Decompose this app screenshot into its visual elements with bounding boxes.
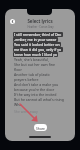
staticText: Yeah, she's beautiful,: [14, 57, 49, 62]
button[interactable]: knew how much I liked yo: [13, 52, 58, 57]
staticText: knew how much I liked yo: [14, 52, 57, 57]
staticText: Another tub of plastic: [14, 72, 51, 77]
staticText: floor: [14, 67, 22, 72]
staticText: You said it looked better on: [14, 42, 60, 47]
staticText: -ember, me in your swear: [14, 37, 57, 42]
button[interactable]: You said it looked better on: [13, 42, 61, 47]
staticText: She went away: [14, 109, 38, 114]
button[interactable]: because you're the door: [13, 87, 56, 92]
button[interactable]: But he cannot all what's rising: [13, 97, 65, 102]
staticText: But he cannot all what's rising: [14, 97, 64, 102]
button[interactable]: -ember, me in your swear: [13, 37, 58, 42]
staticText: Wha: [14, 102, 22, 107]
staticText: because you're the door: [14, 87, 55, 92]
button[interactable]: me than it did you, only if yo: [13, 47, 63, 52]
staticText: me than it did you, only if yo: [14, 47, 62, 52]
button[interactable]: I still remember, third of Dec: [13, 32, 63, 37]
staticText: Heather · Conan Gray: [27, 25, 54, 29]
button[interactable]: If the way into the invited: [13, 92, 58, 97]
button[interactable]: Back: [10, 19, 15, 24]
button[interactable]: And don't take a make you: [13, 82, 60, 87]
button[interactable]: Wha: [13, 102, 23, 107]
staticText: Select lyrics: [27, 18, 53, 24]
button[interactable]: She but out her own fine: [13, 62, 57, 67]
staticText: And don't take a make you: [14, 82, 59, 87]
button[interactable]: Yeah, she's beautiful,: [13, 57, 50, 62]
staticText: Share: [36, 126, 45, 130]
button[interactable]: prayers before: [13, 77, 40, 82]
button[interactable]: floor: [13, 67, 23, 72]
staticText: If the way into the invited: [14, 92, 57, 97]
staticText: I still remember, third of Dec: [14, 32, 62, 37]
button[interactable]: Share: [34, 124, 47, 131]
staticText: She but out her own fine: [14, 62, 56, 67]
button[interactable]: Another tub of plastic: [13, 72, 52, 77]
staticText: prayers before: [14, 77, 39, 82]
